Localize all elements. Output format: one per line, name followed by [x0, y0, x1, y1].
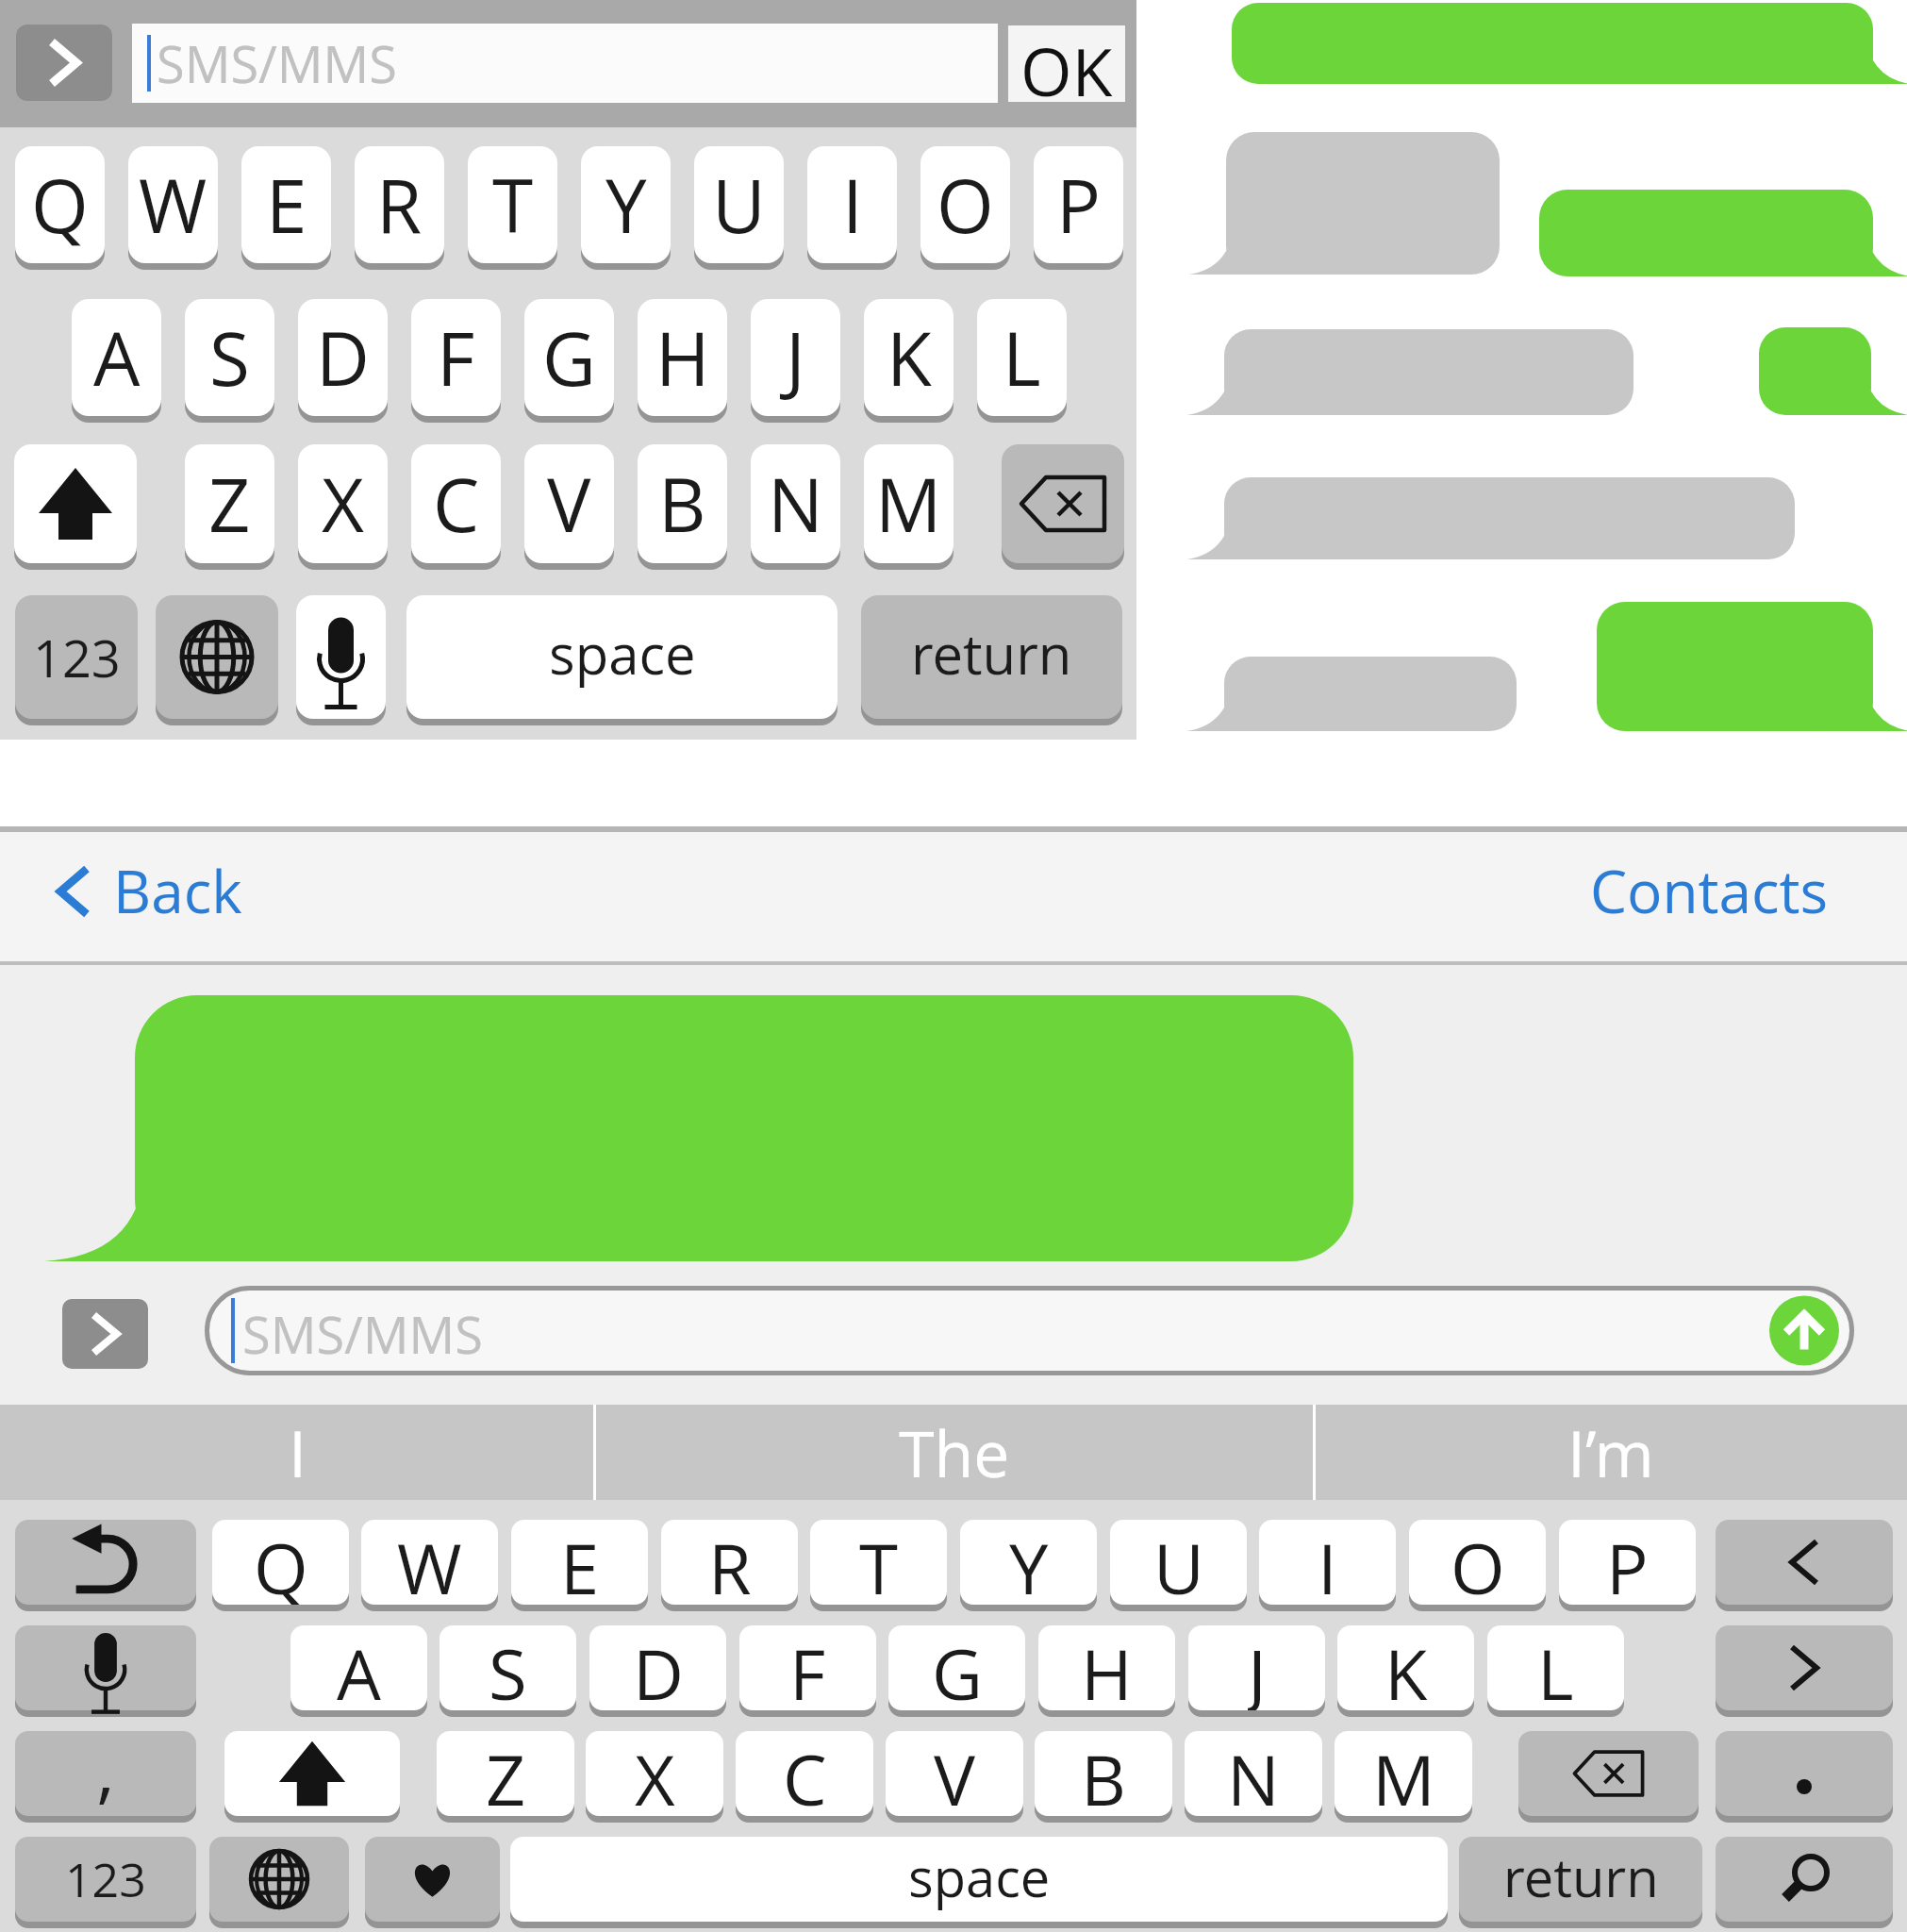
- button[interactable]: SMS/MMS: [132, 24, 998, 103]
- button[interactable]: A: [290, 1625, 427, 1710]
- button[interactable]: space: [406, 595, 837, 719]
- button[interactable]: [224, 1731, 400, 1816]
- button[interactable]: [209, 1837, 349, 1922]
- button[interactable]: X: [298, 444, 388, 563]
- button[interactable]: 123: [15, 1837, 196, 1922]
- button[interactable]: E: [241, 146, 331, 263]
- staticText: X: [635, 1731, 675, 1816]
- button[interactable]: OK: [1008, 25, 1125, 102]
- button[interactable]: N: [751, 444, 840, 563]
- staticText: G: [542, 308, 596, 408]
- button[interactable]: E: [511, 1520, 648, 1605]
- button[interactable]: J: [1188, 1625, 1325, 1710]
- button[interactable]: H: [638, 299, 727, 416]
- button[interactable]: D: [589, 1625, 726, 1710]
- staticText: V: [934, 1731, 976, 1816]
- button[interactable]: B: [638, 444, 727, 563]
- button[interactable]: J: [751, 299, 840, 416]
- staticText: P: [1606, 1520, 1649, 1605]
- button[interactable]: ,: [15, 1731, 196, 1816]
- button[interactable]: R: [355, 146, 444, 263]
- button[interactable]: T: [810, 1520, 947, 1605]
- button[interactable]: M: [864, 444, 953, 563]
- button[interactable]: [296, 595, 386, 719]
- button[interactable]: The: [594, 1405, 1314, 1500]
- button[interactable]: M: [1335, 1731, 1472, 1816]
- button[interactable]: C: [411, 444, 501, 563]
- button[interactable]: Y: [960, 1520, 1097, 1605]
- button[interactable]: T: [468, 146, 557, 263]
- button[interactable]: [15, 1520, 196, 1605]
- button[interactable]: B: [1035, 1731, 1172, 1816]
- button[interactable]: [62, 1299, 148, 1369]
- button[interactable]: return: [861, 595, 1122, 719]
- button[interactable]: P: [1559, 1520, 1696, 1605]
- button[interactable]: Y: [581, 146, 671, 263]
- button[interactable]: [16, 25, 112, 101]
- button[interactable]: R: [661, 1520, 798, 1605]
- button[interactable]: Q: [15, 146, 105, 263]
- staticText: H: [1081, 1625, 1133, 1710]
- button[interactable]: W: [361, 1520, 498, 1605]
- button[interactable]: V: [524, 444, 614, 563]
- button[interactable]: space: [510, 1837, 1448, 1922]
- button[interactable]: I: [0, 1405, 594, 1500]
- button[interactable]: O: [920, 146, 1010, 263]
- staticText: O: [1451, 1520, 1505, 1605]
- staticText: E: [560, 1520, 600, 1605]
- button[interactable]: N: [1185, 1731, 1322, 1816]
- button[interactable]: L: [977, 299, 1067, 416]
- button[interactable]: C: [736, 1731, 873, 1816]
- button[interactable]: [1716, 1625, 1893, 1710]
- button[interactable]: O: [1409, 1520, 1546, 1605]
- staticText: I: [842, 155, 863, 255]
- button[interactable]: U: [694, 146, 784, 263]
- button[interactable]: Z: [185, 444, 274, 563]
- button[interactable]: U: [1110, 1520, 1247, 1605]
- staticText: S: [209, 308, 250, 408]
- button[interactable]: P: [1034, 146, 1123, 263]
- button[interactable]: S: [185, 299, 274, 416]
- staticText: 123: [33, 623, 121, 692]
- staticText: C: [783, 1731, 827, 1816]
- button[interactable]: [1002, 444, 1124, 563]
- button[interactable]: Z: [437, 1731, 574, 1816]
- staticText: Y: [605, 155, 647, 255]
- button[interactable]: K: [1337, 1625, 1474, 1710]
- button[interactable]: I: [1259, 1520, 1396, 1605]
- button[interactable]: G: [888, 1625, 1025, 1710]
- button[interactable]: Q: [212, 1520, 349, 1605]
- button[interactable]: [365, 1837, 500, 1922]
- button[interactable]: K: [864, 299, 953, 416]
- button[interactable]: V: [886, 1731, 1023, 1816]
- button[interactable]: return: [1459, 1837, 1702, 1922]
- button[interactable]: Contacts: [1590, 851, 1828, 930]
- button[interactable]: D: [298, 299, 388, 416]
- staticText: SMS/MMS: [157, 28, 397, 98]
- button[interactable]: I: [807, 146, 897, 263]
- button[interactable]: Back: [47, 849, 274, 934]
- button[interactable]: G: [524, 299, 614, 416]
- button[interactable]: [156, 595, 278, 719]
- button[interactable]: H: [1038, 1625, 1175, 1710]
- button[interactable]: I’m: [1314, 1405, 1907, 1500]
- button[interactable]: [1716, 1837, 1893, 1922]
- button[interactable]: [1716, 1520, 1893, 1605]
- button[interactable]: F: [739, 1625, 876, 1710]
- button[interactable]: [1518, 1731, 1699, 1816]
- button[interactable]: SMS/MMS: [205, 1286, 1854, 1375]
- button[interactable]: L: [1487, 1625, 1624, 1710]
- button[interactable]: 123: [15, 595, 138, 719]
- staticText: space: [908, 1840, 1051, 1912]
- staticText: Back: [113, 851, 242, 930]
- button[interactable]: [1716, 1731, 1893, 1816]
- button[interactable]: S: [439, 1625, 576, 1710]
- button[interactable]: X: [586, 1731, 723, 1816]
- staticText: K: [887, 308, 932, 408]
- button[interactable]: W: [128, 146, 218, 263]
- button[interactable]: [14, 444, 137, 563]
- button[interactable]: A: [72, 299, 161, 416]
- button[interactable]: F: [411, 299, 501, 416]
- staticText: X: [322, 454, 365, 554]
- button[interactable]: [15, 1625, 196, 1710]
